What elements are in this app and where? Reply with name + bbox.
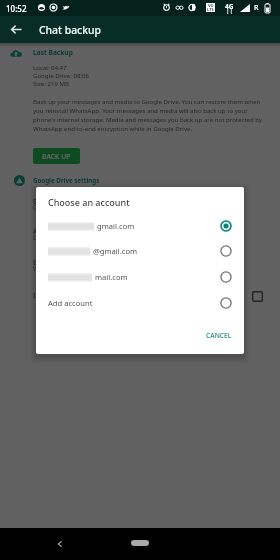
- button[interactable]: Account: [0, 226, 280, 254]
- staticText: Local: 04:47: [33, 63, 67, 71]
- staticText: CANCEL: [206, 331, 232, 340]
- staticText: Last Backup: [33, 48, 73, 57]
- button[interactable]: Back: [53, 537, 67, 551]
- button[interactable]: CANCEL: [202, 328, 236, 343]
- staticText: 4G: [225, 2, 234, 11]
- staticText: Back up over: [33, 257, 78, 267]
- button[interactable]: Back up over: [0, 257, 280, 285]
- staticText: Google Drive: 08:06: [33, 71, 90, 79]
- staticText: @gmail.com: [93, 246, 138, 256]
- staticText: LTE: [207, 7, 214, 12]
- staticText: Size: 219 MB: [33, 79, 69, 87]
- staticText: R: [254, 3, 259, 13]
- button[interactable]: Back up to Google Drive: [0, 196, 280, 224]
- button[interactable]: mail.com: [36, 264, 244, 290]
- staticText: Choose an account: [48, 196, 130, 208]
- staticText: Include videos: [33, 290, 83, 300]
- staticText: Add account: [48, 298, 93, 308]
- staticText: Back up to Google Drive: [33, 196, 116, 206]
- staticText: mail.com: [95, 272, 128, 282]
- staticText: VO: [208, 3, 214, 8]
- staticText: 10:52: [6, 3, 27, 14]
- button[interactable]: gmail.com: [36, 213, 244, 239]
- staticText: Chat backup: [39, 23, 101, 37]
- button[interactable]: Back: [8, 21, 25, 38]
- staticText: BACK UP: [42, 152, 71, 161]
- button[interactable]: @gmail.com: [36, 238, 244, 264]
- staticText: Back up your messages and media to Googl…: [33, 97, 263, 133]
- button[interactable]: Include videos: [0, 290, 280, 310]
- button[interactable]: BACK UP: [33, 148, 80, 164]
- staticText: Account: [33, 226, 61, 236]
- staticText: Google Drive settings: [33, 176, 100, 184]
- staticText: backup@gmail.com: [33, 233, 93, 242]
- staticText: Wi-Fi only: [33, 264, 63, 273]
- staticText: Only when I tap "Back up": [33, 203, 111, 212]
- button[interactable]: Add account: [36, 290, 244, 316]
- staticText: gmail.com: [97, 221, 135, 231]
